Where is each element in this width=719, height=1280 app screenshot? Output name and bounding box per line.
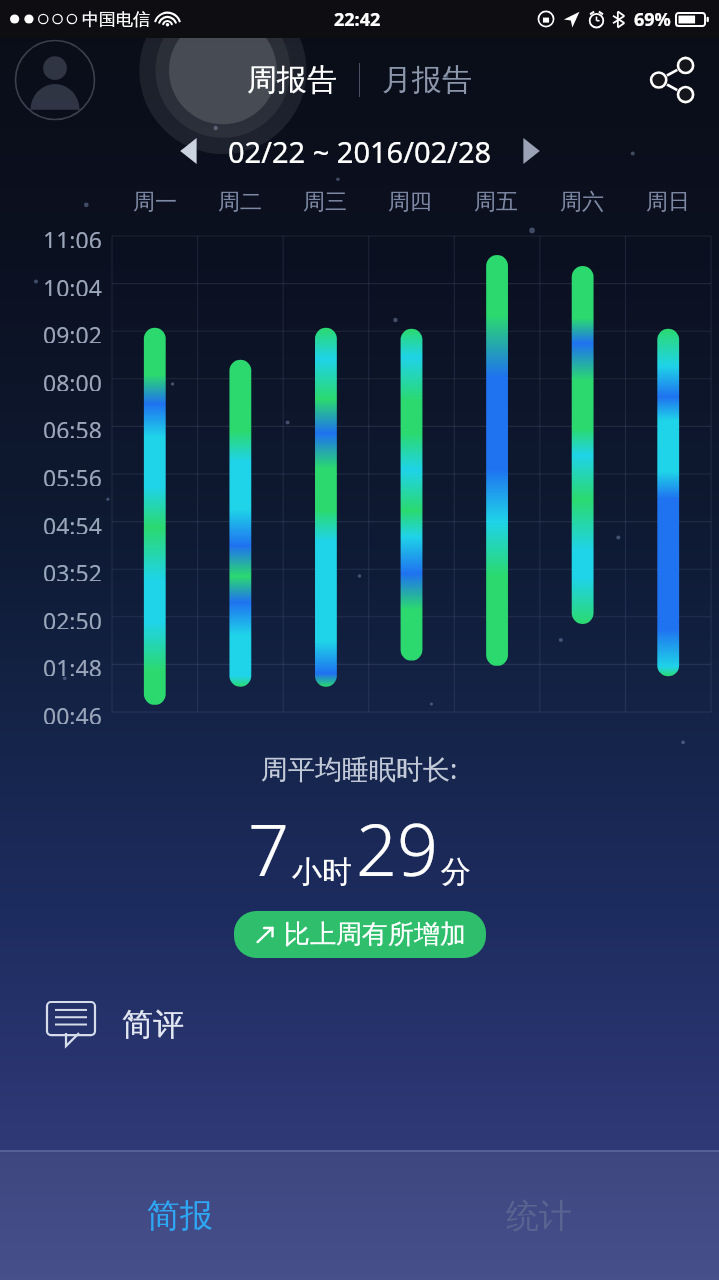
button[interactable]: 月报告	[372, 55, 482, 105]
staticText: 04:54	[43, 510, 102, 534]
staticText: 29	[356, 799, 439, 897]
button[interactable]: Next week	[506, 126, 556, 176]
staticText: 周日	[646, 188, 690, 216]
staticText: 周报告	[247, 61, 337, 99]
staticText: 01:48	[43, 652, 102, 676]
staticText: 02/22 ~ 2016/02/28	[228, 132, 492, 171]
staticText: 周平均睡眠时长:	[261, 750, 458, 787]
staticText: 周四	[388, 188, 432, 216]
staticText: 09:02	[43, 319, 102, 343]
staticText: 中国电信	[82, 9, 150, 30]
staticText: 月报告	[382, 61, 472, 99]
staticText: 周二	[218, 188, 262, 216]
staticText: 22:42	[334, 7, 381, 32]
staticText: 周五	[474, 188, 518, 216]
staticText: 7	[248, 799, 290, 897]
staticText: 08:00	[43, 367, 102, 391]
staticText: 02:50	[43, 605, 102, 629]
button[interactable]: 简评	[0, 980, 719, 1068]
button[interactable]: Profile	[14, 39, 96, 121]
button[interactable]: 比上周有所增加	[234, 911, 486, 958]
button[interactable]: Previous week	[164, 126, 214, 176]
staticText: 周一	[133, 188, 177, 216]
staticText: 周六	[560, 188, 604, 216]
staticText: 周三	[303, 188, 347, 216]
button[interactable]: 统计	[359, 1152, 719, 1280]
staticText: 11:06	[43, 224, 102, 248]
staticText: 小时	[292, 853, 352, 891]
button[interactable]: 周报告	[237, 55, 347, 105]
staticText: 10:04	[43, 272, 102, 296]
staticText: 05:56	[43, 462, 102, 486]
staticText: 统计	[506, 1195, 572, 1237]
staticText: 分	[441, 853, 471, 891]
staticText: 69%	[634, 7, 671, 32]
button[interactable]: Share	[643, 52, 699, 108]
staticText: 简报	[147, 1195, 213, 1237]
staticText: 比上周有所增加	[284, 918, 466, 951]
button[interactable]: 简报	[0, 1152, 359, 1280]
staticText: 00:46	[43, 700, 102, 724]
staticText: 03:52	[43, 557, 102, 581]
staticText: 简评	[122, 1005, 184, 1044]
staticText: 06:58	[43, 414, 102, 438]
